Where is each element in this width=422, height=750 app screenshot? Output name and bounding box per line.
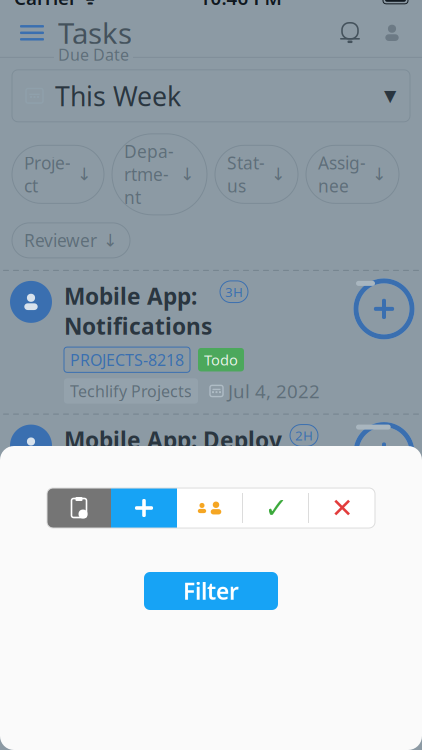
button[interactable]: Pending — [47, 488, 111, 528]
button[interactable]: Department — [112, 134, 207, 215]
staticText: ᯤ — [77, 0, 98, 9]
staticText: PROJECTS-8218 — [70, 349, 184, 370]
staticText: App performance — [64, 599, 262, 629]
staticText: Tasks — [58, 13, 132, 52]
button[interactable]: Status — [215, 145, 298, 203]
staticText: ↓ — [77, 164, 92, 184]
staticText: Techlify Projects — [70, 380, 192, 401]
staticText: ↓ — [372, 164, 387, 184]
button[interactable]: Profile — [372, 11, 412, 55]
staticText: Filter — [183, 576, 239, 606]
button[interactable]: Notifications — [328, 11, 372, 55]
staticText: 3H — [225, 283, 243, 301]
staticText: Project — [24, 151, 71, 197]
staticText: PROJECTS-8711 — [70, 524, 184, 545]
button[interactable]: Menu — [10, 11, 54, 55]
button[interactable]: Mobile App: Notifications — [0, 271, 422, 414]
staticText: Techlify Projects — [70, 555, 192, 576]
staticText: ↓ — [180, 164, 195, 184]
staticText: Reviewer — [24, 229, 97, 252]
staticText: Assignee — [318, 151, 366, 197]
staticText: ✕ — [331, 493, 353, 523]
button[interactable]: Rejected — [309, 488, 375, 528]
button[interactable]: Reviewer — [12, 223, 130, 258]
staticText: 10:46 PM — [199, 0, 281, 10]
button[interactable]: App performance — [0, 589, 422, 750]
staticText: stores — [64, 486, 134, 516]
staticText: Jul 6, 2022 — [228, 553, 320, 578]
button[interactable]: Completed — [243, 488, 309, 528]
button[interactable]: Mobile App: Deploy to the — [0, 415, 422, 588]
button[interactable]: Filter — [144, 572, 278, 610]
button[interactable]: Project — [12, 145, 104, 203]
staticText: ↓ — [271, 164, 286, 184]
staticText: Department — [124, 140, 174, 209]
button[interactable]: Assignee — [306, 145, 399, 203]
staticText: Todo — [204, 525, 238, 544]
button[interactable]: This Week — [12, 70, 410, 122]
staticText: Jul 4, 2022 — [228, 379, 320, 403]
staticText: Mobile App: Deploy to the — [64, 425, 282, 485]
staticText: Mobile App: Notifications — [64, 281, 212, 341]
staticText: ✓ — [264, 492, 287, 524]
staticText: Carrier — [14, 0, 77, 10]
staticText: 2H — [295, 427, 313, 444]
staticText: This Week — [55, 78, 181, 113]
staticText: Due Date — [58, 44, 129, 65]
button[interactable]: Assigned — [177, 488, 243, 528]
button[interactable]: In progress — [111, 488, 177, 528]
staticText: ▼ — [384, 87, 396, 105]
staticText: Todo — [204, 350, 238, 369]
staticText: Status — [227, 151, 265, 197]
staticText: ↓ — [103, 230, 118, 250]
